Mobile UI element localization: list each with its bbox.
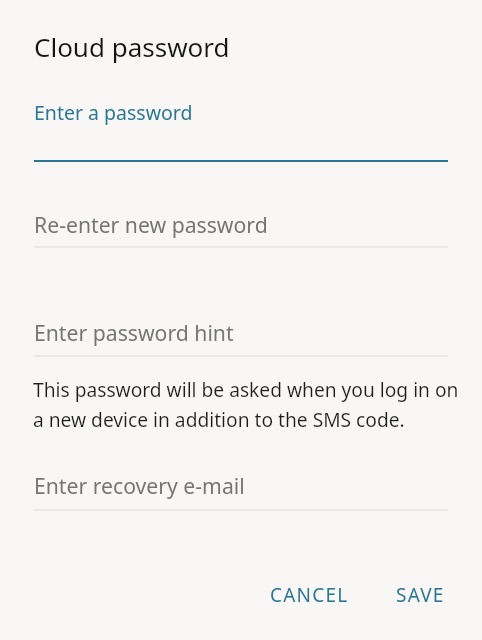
staticText: Enter a password [34,99,193,126]
button[interactable] [34,206,448,254]
staticText: CANCEL [270,582,349,608]
button[interactable] [34,96,448,166]
button[interactable]: CANCEL [254,569,362,613]
staticText: This password will be asked when you log… [33,376,469,433]
button[interactable] [34,314,448,362]
staticText: Enter password hint [34,318,234,347]
staticText: Re-enter new password [34,210,268,239]
button[interactable]: SAVE [380,569,458,613]
button[interactable] [34,467,448,515]
staticText: SAVE [396,582,445,608]
staticText: Cloud password [34,29,230,64]
staticText: Enter recovery e-mail [34,471,245,500]
